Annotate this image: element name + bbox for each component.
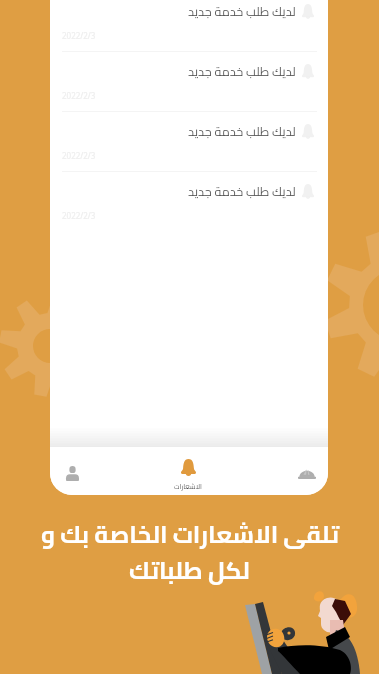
- button[interactable]: Services: [286, 447, 328, 495]
- button[interactable]: لديك طلب خدمة جديد: [50, 112, 328, 172]
- staticText: لديك طلب خدمة جديد: [188, 0, 296, 23]
- staticText: تلقى الاشعارات الخاصة بك و: [41, 512, 339, 557]
- staticText: لكل طلباتك: [129, 548, 250, 593]
- staticText: 2022/2/3: [62, 210, 96, 221]
- button[interactable]: الاشعارات: [150, 447, 226, 495]
- button[interactable]: لديك طلب خدمة جديد: [50, 172, 328, 232]
- staticText: 2022/2/3: [62, 90, 96, 101]
- staticText: الاشعارات: [174, 480, 202, 493]
- staticText: 2022/2/3: [62, 150, 96, 161]
- staticText: 2022/2/3: [62, 30, 96, 41]
- staticText: لديك طلب خدمة جديد: [188, 60, 296, 83]
- button[interactable]: لديك طلب خدمة جديد: [50, 0, 328, 52]
- button[interactable]: لديك طلب خدمة جديد: [50, 52, 328, 112]
- button[interactable]: Profile: [51, 447, 93, 495]
- staticText: لديك طلب خدمة جديد: [188, 180, 296, 203]
- staticText: لديك طلب خدمة جديد: [188, 120, 296, 143]
